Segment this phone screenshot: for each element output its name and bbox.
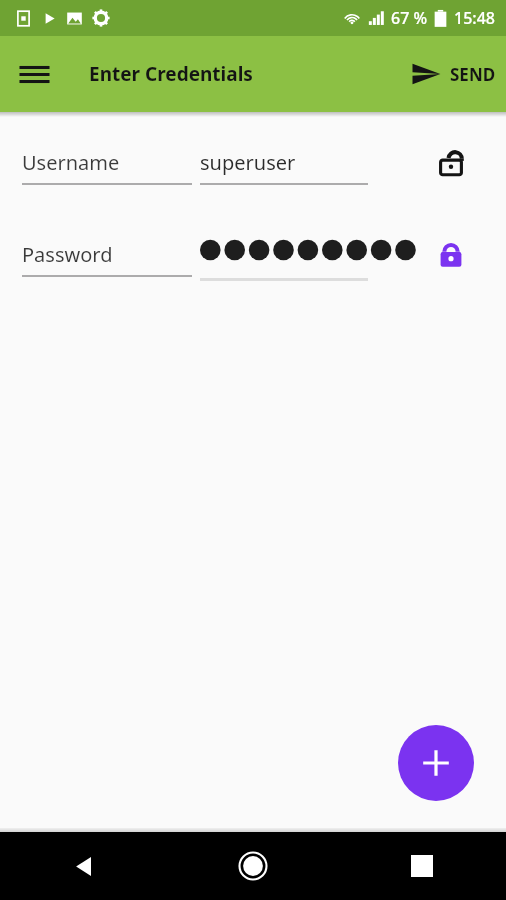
button[interactable]: Unlocked — [422, 135, 480, 207]
staticText: 15:48 — [454, 7, 495, 29]
staticText: Username — [22, 149, 120, 176]
button[interactable]: superuser — [200, 135, 368, 207]
button[interactable]: Username — [22, 135, 192, 207]
button[interactable]: Locked — [422, 227, 480, 299]
button[interactable] — [200, 227, 368, 299]
button[interactable]: Add — [398, 725, 474, 801]
staticText: superuser — [200, 149, 296, 176]
button[interactable]: Recent apps — [337, 832, 506, 900]
button[interactable]: Open navigation menu — [8, 48, 60, 100]
button[interactable]: Back — [0, 832, 168, 900]
staticText: SEND — [450, 63, 496, 86]
staticText: Enter Credentials — [89, 61, 253, 87]
button[interactable]: Home — [168, 832, 337, 900]
button[interactable]: SEND — [405, 49, 502, 99]
staticText: Password — [22, 241, 113, 268]
staticText: 67 % — [391, 7, 428, 29]
button[interactable]: Password — [22, 227, 192, 299]
